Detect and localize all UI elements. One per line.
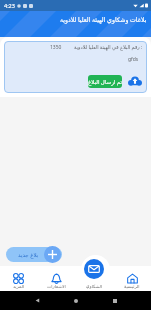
staticText: المزيد <box>13 284 25 289</box>
staticText: 1350 <box>50 44 62 51</box>
staticText: الشكاوي <box>86 284 103 289</box>
button[interactable]: الاشعارات <box>37 266 75 291</box>
button[interactable]: Back <box>35 298 40 303</box>
button[interactable]: Upload <box>128 74 142 88</box>
staticText: بلاغ جديد <box>18 251 39 258</box>
button[interactable]: المزيد <box>0 266 37 291</box>
button[interactable]: الرئيسية <box>113 266 151 291</box>
button[interactable]: الشكاوي <box>75 266 113 291</box>
staticText: 4:23 <box>4 2 15 9</box>
staticText: تم ارسال البلاغ <box>88 78 122 85</box>
button[interactable]: بلاغ جديد <box>6 247 62 262</box>
staticText: الاشعارات <box>47 284 66 289</box>
button[interactable]: New report <box>44 246 61 263</box>
staticText: gfds <box>128 56 139 63</box>
staticText: الرئيسية <box>124 284 140 289</box>
staticText: رقم البلاغ في الهيئة العليا للادوية : <box>74 44 143 51</box>
staticText: بلاغات وشكاوي الهيئة العليا للادوية <box>60 15 147 23</box>
button[interactable]: Home <box>74 299 78 303</box>
button[interactable]: تم ارسال البلاغ <box>88 75 122 88</box>
